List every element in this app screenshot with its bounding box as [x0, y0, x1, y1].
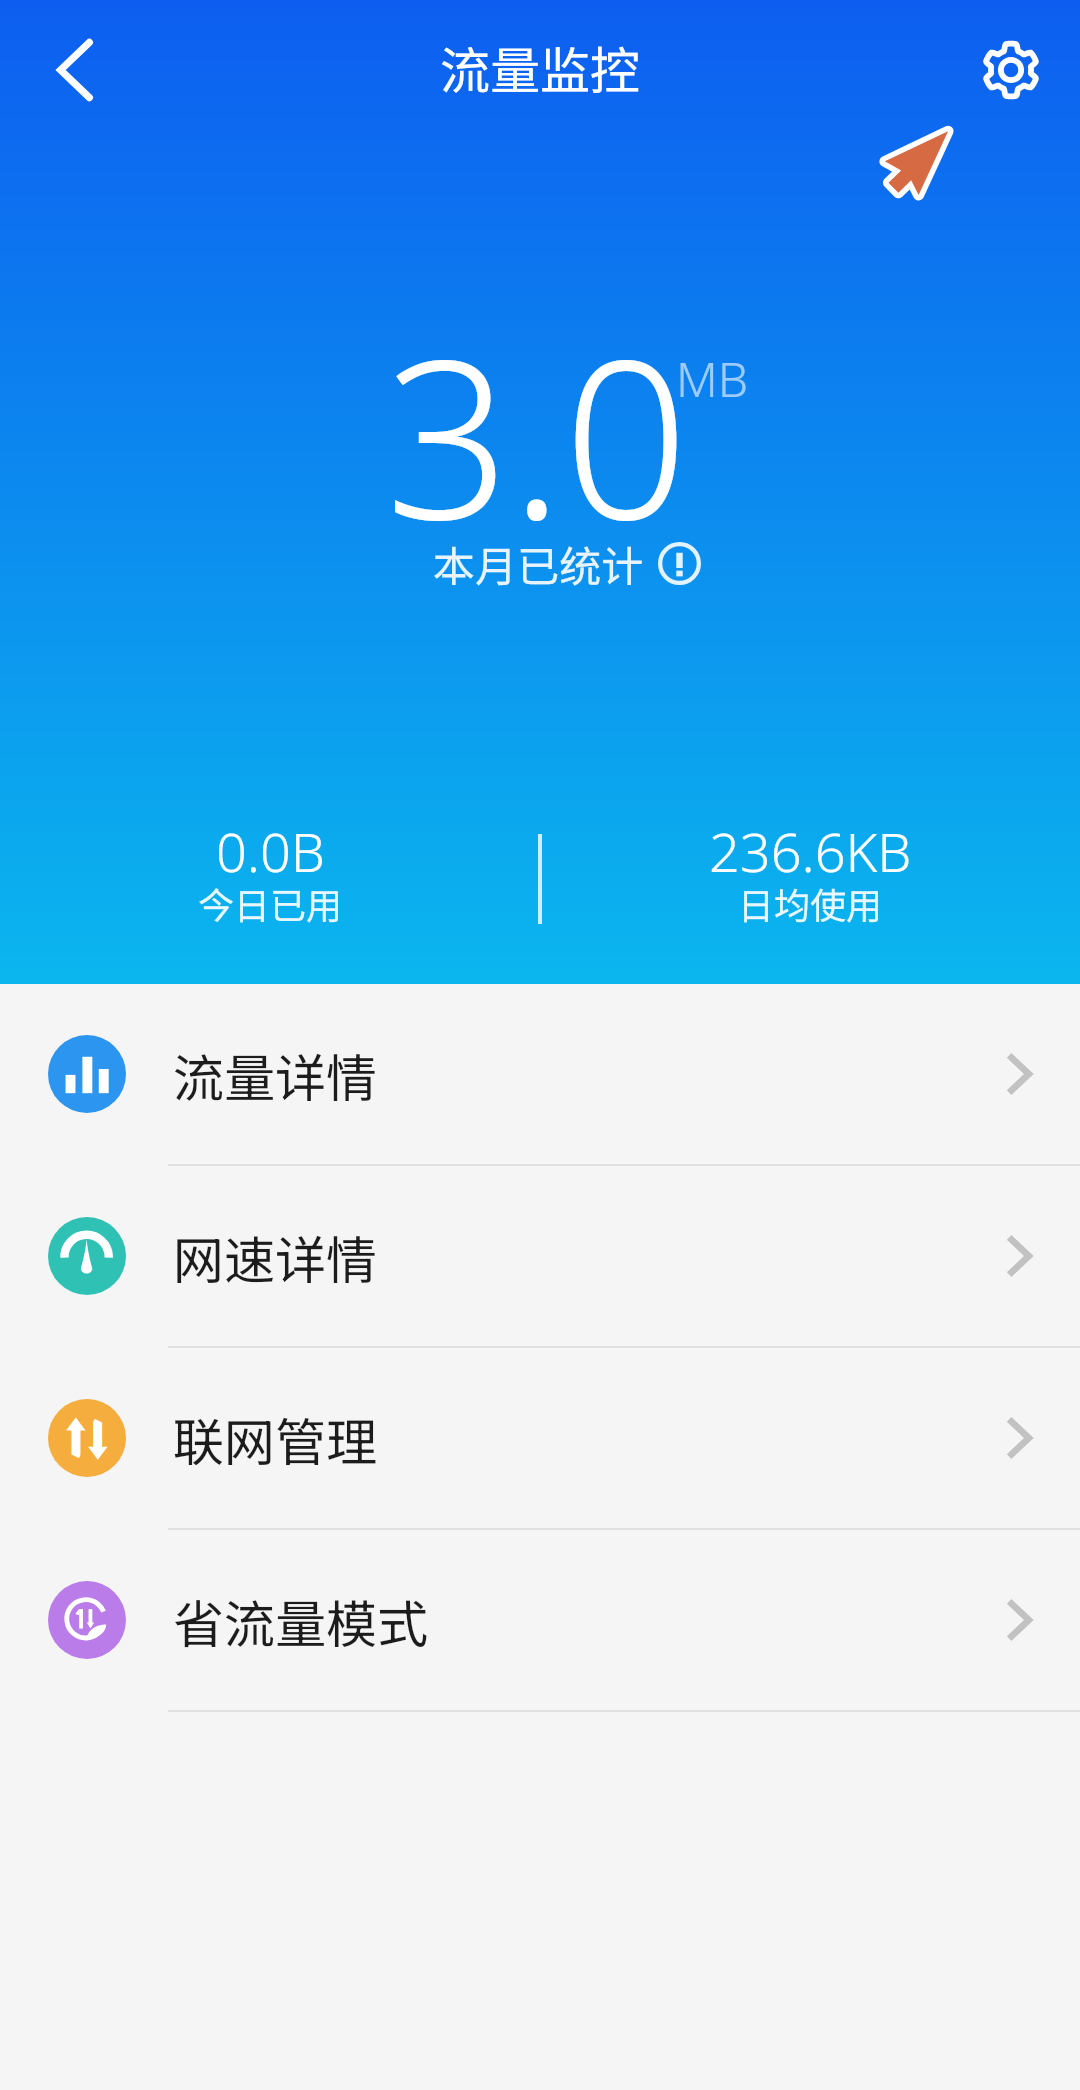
staticText: MB — [676, 346, 749, 411]
staticText: 236.6KB — [709, 814, 912, 888]
staticText: 流量详情 — [173, 1038, 378, 1112]
button[interactable]: 省流量模式 — [0, 1530, 1080, 1710]
staticText: 日均使用 — [738, 877, 883, 929]
staticText: 网速详情 — [173, 1220, 378, 1294]
staticText: 0.0B — [216, 814, 325, 888]
button[interactable]: 流量详情 — [0, 984, 1080, 1164]
button[interactable]: Back — [27, 22, 123, 118]
staticText: 省流量模式 — [173, 1584, 429, 1658]
button[interactable]: Settings — [963, 22, 1059, 118]
staticText: 本月已统计 — [433, 533, 644, 593]
staticText: 流量监控 — [440, 31, 640, 103]
staticText: 3.0 — [385, 285, 689, 583]
staticText: 联网管理 — [173, 1402, 378, 1476]
button[interactable]: 网速详情 — [0, 1166, 1080, 1346]
staticText: 今日已用 — [198, 877, 343, 929]
button[interactable]: 联网管理 — [0, 1348, 1080, 1528]
